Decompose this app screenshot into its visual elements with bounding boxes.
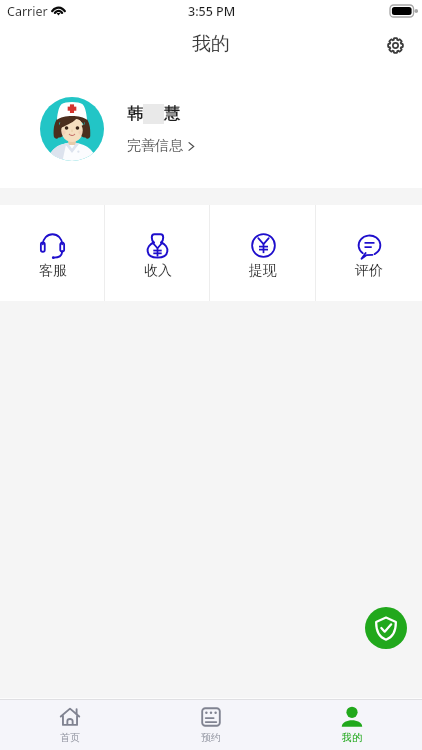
staticText: 预约	[201, 731, 221, 744]
staticText: 收入	[144, 262, 172, 280]
staticText: Carrier	[7, 3, 48, 20]
staticText: 评价	[355, 262, 383, 280]
staticText: 客服	[39, 262, 67, 280]
staticText: 提现	[249, 262, 277, 280]
button[interactable]: 我的	[281, 700, 422, 750]
button[interactable]: 客服	[0, 205, 105, 301]
button[interactable]: 完善信息	[127, 137, 197, 155]
staticText: 慧	[164, 104, 180, 124]
button[interactable]: 评价	[316, 205, 422, 301]
staticText: 首页	[60, 731, 80, 744]
button[interactable]: 提现	[210, 205, 316, 301]
button[interactable]: 首页	[0, 700, 140, 750]
button[interactable]: Settings	[381, 32, 409, 60]
staticText: 完善信息	[127, 137, 183, 155]
button[interactable]: 收入	[105, 205, 210, 301]
button[interactable]: Security	[365, 607, 407, 649]
staticText: 我的	[342, 731, 362, 744]
staticText: 韩	[127, 104, 143, 124]
button[interactable]: 预约	[140, 700, 281, 750]
staticText: 我的	[192, 32, 230, 56]
staticText: 3:55 PM	[188, 3, 236, 20]
